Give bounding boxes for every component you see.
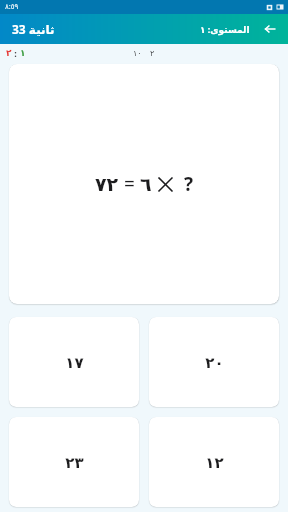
staticText: ٧٢ — [95, 173, 119, 195]
staticText: ٢ — [150, 49, 155, 58]
staticText: ٢٣ — [65, 454, 84, 471]
staticText: ١ — [20, 48, 26, 58]
staticText: ١٠ — [133, 49, 142, 58]
staticText: ٨:٥٩ — [5, 2, 19, 12]
staticText: 33 ثانية — [12, 21, 55, 37]
staticText: ٢ — [6, 48, 12, 58]
staticText: ٢٠ — [205, 354, 224, 371]
button[interactable]: ١٧ — [9, 317, 139, 407]
button[interactable]: Back — [260, 19, 280, 39]
button[interactable]: ١٢ — [149, 417, 279, 507]
staticText: المستوى: ١ — [200, 23, 250, 35]
staticText: ١٧ — [65, 354, 84, 371]
staticText: : — [12, 47, 20, 59]
button[interactable]: ٢٠ — [149, 317, 279, 407]
staticText: ? — [184, 171, 194, 197]
staticText: ٦ — [140, 173, 152, 195]
staticText: ١٢ — [205, 454, 224, 471]
staticText: = — [124, 171, 135, 197]
button[interactable]: ٢٣ — [9, 417, 139, 507]
